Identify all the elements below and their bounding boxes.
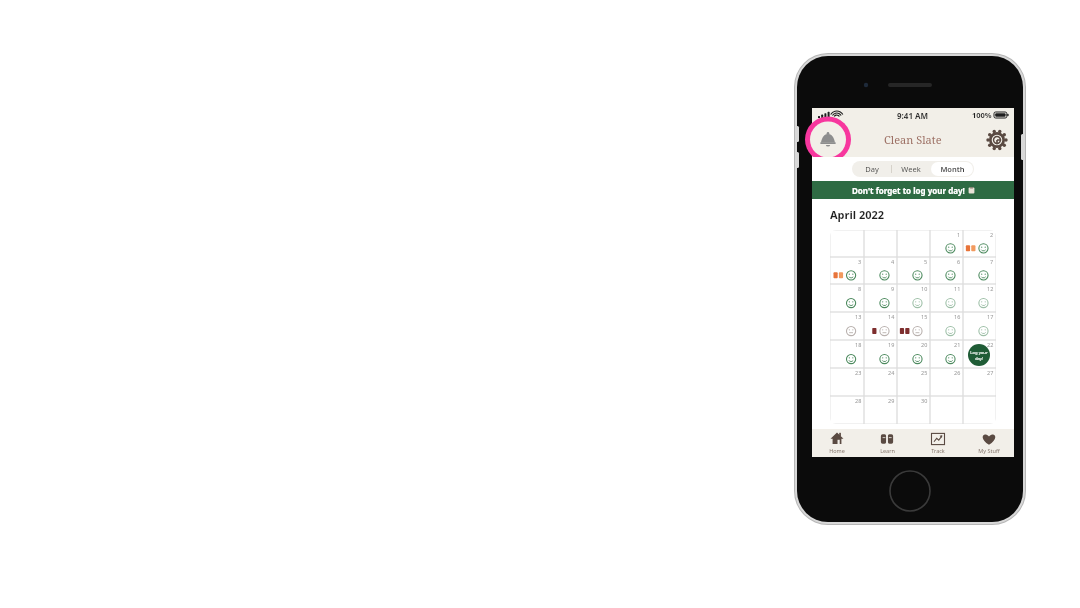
- staticText: 12: [987, 285, 994, 292]
- button[interactable]: 1: [930, 230, 963, 257]
- button[interactable]: My Stuff: [963, 429, 1014, 457]
- staticText: 28: [855, 397, 862, 404]
- staticText: 22: [987, 341, 994, 348]
- button[interactable]: 20: [897, 340, 930, 368]
- button[interactable]: 24: [864, 368, 897, 396]
- button[interactable]: 23: [830, 368, 864, 396]
- staticText: 2: [990, 231, 994, 238]
- staticText: 6: [957, 258, 961, 265]
- staticText: 23: [855, 369, 862, 376]
- button[interactable]: [830, 230, 864, 257]
- button[interactable]: [897, 230, 930, 257]
- button[interactable]: Notifications: [805, 122, 851, 157]
- staticText: Day: [865, 164, 879, 174]
- button[interactable]: Learn: [862, 429, 912, 457]
- button[interactable]: 12: [963, 284, 996, 312]
- staticText: 9:41 AM: [897, 110, 929, 121]
- button[interactable]: 15: [897, 312, 930, 340]
- button[interactable]: 2: [963, 230, 996, 257]
- staticText: 11: [954, 285, 961, 292]
- staticText: 24: [888, 369, 895, 376]
- button[interactable]: 26: [930, 368, 963, 396]
- button[interactable]: [930, 396, 963, 424]
- button[interactable]: 27: [963, 368, 996, 396]
- staticText: 1: [957, 231, 961, 238]
- button[interactable]: Week: [893, 162, 929, 176]
- button[interactable]: Don't forget to log your day!: [812, 181, 1014, 199]
- button[interactable]: 22: [963, 340, 996, 368]
- button[interactable]: 13: [830, 312, 864, 340]
- button[interactable]: 29: [864, 396, 897, 424]
- button[interactable]: Settings: [986, 129, 1008, 151]
- staticText: 13: [855, 313, 862, 320]
- staticText: 4: [891, 258, 895, 265]
- button[interactable]: 19: [864, 340, 897, 368]
- staticText: Home: [829, 447, 845, 454]
- staticText: 25: [921, 369, 928, 376]
- button[interactable]: 3: [830, 257, 864, 284]
- staticText: Learn: [880, 447, 895, 454]
- button[interactable]: 28: [830, 396, 864, 424]
- staticText: Don't forget to log your day!: [852, 185, 965, 196]
- staticText: 5: [924, 258, 928, 265]
- button[interactable]: 11: [930, 284, 963, 312]
- staticText: Log your day!: [970, 350, 988, 361]
- staticText: 30: [921, 397, 928, 404]
- staticText: 19: [888, 341, 895, 348]
- staticText: 3: [858, 258, 862, 265]
- button[interactable]: 5: [897, 257, 930, 284]
- staticText: 9: [891, 285, 895, 292]
- button[interactable]: 16: [930, 312, 963, 340]
- button[interactable]: 4: [864, 257, 897, 284]
- button[interactable]: Home: [812, 429, 862, 457]
- button[interactable]: 18: [830, 340, 864, 368]
- button[interactable]: Day: [853, 162, 890, 176]
- staticText: 18: [855, 341, 862, 348]
- staticText: 21: [954, 341, 961, 348]
- button[interactable]: 8: [830, 284, 864, 312]
- staticText: 7: [990, 258, 994, 265]
- button[interactable]: 30: [897, 396, 930, 424]
- staticText: 17: [987, 313, 994, 320]
- staticText: 100%: [972, 110, 992, 120]
- staticText: My Stuff: [978, 447, 1000, 454]
- staticText: 16: [954, 313, 961, 320]
- button[interactable]: Month: [931, 162, 973, 176]
- staticText: 8: [858, 285, 862, 292]
- button[interactable]: 25: [897, 368, 930, 396]
- button[interactable]: [864, 230, 897, 257]
- button[interactable]: Log your day!: [968, 344, 990, 366]
- staticText: Week: [901, 164, 921, 174]
- staticText: 20: [921, 341, 928, 348]
- button[interactable]: 10: [897, 284, 930, 312]
- staticText: 26: [954, 369, 961, 376]
- staticText: 29: [888, 397, 895, 404]
- staticText: Track: [931, 447, 945, 454]
- staticText: 15: [921, 313, 928, 320]
- staticText: 10: [921, 285, 928, 292]
- button[interactable]: 7: [963, 257, 996, 284]
- staticText: Clean Slate: [884, 132, 942, 147]
- button[interactable]: 6: [930, 257, 963, 284]
- button[interactable]: 14: [864, 312, 897, 340]
- button[interactable]: 9: [864, 284, 897, 312]
- staticText: 27: [987, 369, 994, 376]
- button[interactable]: [963, 396, 996, 424]
- staticText: Month: [940, 164, 965, 174]
- staticText: April 2022: [830, 207, 885, 222]
- button[interactable]: 21: [930, 340, 963, 368]
- button[interactable]: Track: [912, 429, 963, 457]
- button[interactable]: 17: [963, 312, 996, 340]
- staticText: 14: [888, 313, 895, 320]
